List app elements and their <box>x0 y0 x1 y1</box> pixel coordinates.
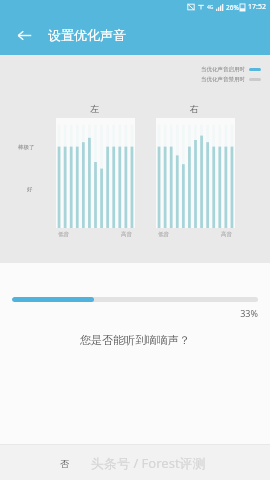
staticText: 低音 <box>158 231 169 238</box>
staticText: 棒极了 <box>18 144 35 151</box>
staticText: 低音 <box>58 231 69 238</box>
button[interactable]: 否 <box>0 445 270 480</box>
staticText: 4G <box>207 4 214 11</box>
staticText: 高音 <box>121 231 132 238</box>
staticText: 头条号 / Forest评测 <box>91 454 206 472</box>
button[interactable]: Back <box>12 23 36 47</box>
staticText: 当优化声音禁用时 <box>201 76 245 83</box>
staticText: 设置优化声音 <box>48 27 126 43</box>
staticText: 左 <box>90 103 99 114</box>
staticText: 您是否能听到嘀嘀声？ <box>0 333 270 347</box>
staticText: 17:52 <box>248 2 266 12</box>
staticText: 26% <box>226 3 239 12</box>
staticText: 33% <box>12 307 258 319</box>
staticText: 好 <box>27 186 33 193</box>
staticText: 高音 <box>221 231 232 238</box>
staticText: 当优化声音启用时 <box>201 66 245 73</box>
staticText: 否 <box>60 458 69 469</box>
staticText: 右 <box>190 103 199 114</box>
